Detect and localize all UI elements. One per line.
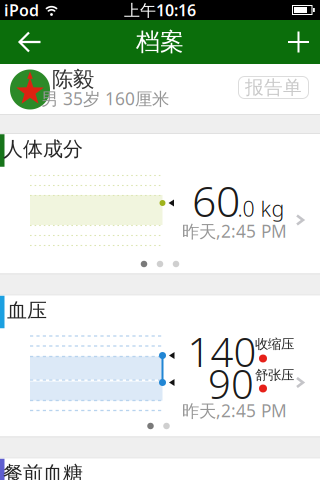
staticText: 140 <box>187 325 256 378</box>
staticText: 上午10:16 <box>124 0 196 21</box>
staticText: iPod <box>4 0 39 21</box>
staticText: 舒张压 <box>255 367 294 383</box>
staticText: 昨天,2:45 PM <box>182 399 287 422</box>
button[interactable]: Add <box>288 20 320 63</box>
staticText: 陈毅 <box>52 66 94 93</box>
staticText: 60 <box>192 172 240 229</box>
staticText: 男 35岁 160厘米 <box>41 87 169 110</box>
button[interactable]: 人体成分 <box>0 134 320 273</box>
staticText: .0 kg <box>237 194 284 223</box>
button[interactable]: 餐前血糖 <box>0 458 320 480</box>
button[interactable]: Back <box>0 20 42 64</box>
staticText: 报告单 <box>245 76 302 99</box>
button[interactable]: 血压 <box>0 295 320 436</box>
staticText: 收缩压 <box>255 336 294 352</box>
staticText: 人体成分 <box>3 137 83 161</box>
staticText: 档案 <box>136 27 184 57</box>
staticText: 血压 <box>7 298 47 323</box>
staticText: 昨天,2:45 PM <box>182 219 287 242</box>
staticText: 餐前血糖 <box>3 461 83 480</box>
button[interactable]: 报告单 <box>238 76 309 99</box>
staticText: 90 <box>208 357 254 410</box>
